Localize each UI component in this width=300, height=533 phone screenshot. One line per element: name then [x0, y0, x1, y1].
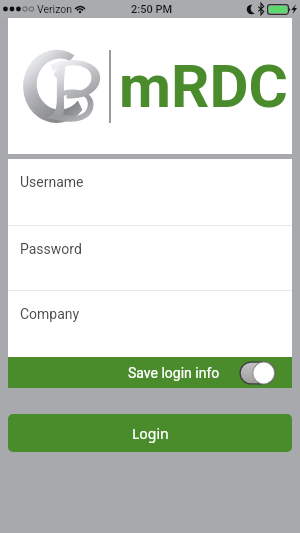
staticText: Password [20, 241, 82, 257]
staticText: Verizon [37, 3, 73, 15]
staticText: Company [20, 306, 80, 322]
button[interactable]: Password [8, 226, 292, 290]
button[interactable]: Company [8, 291, 292, 357]
staticText: Save login info [128, 365, 220, 381]
staticText: mRDC [119, 51, 288, 121]
button[interactable]: Login [8, 414, 292, 452]
staticText: 2:50 PM [131, 3, 173, 16]
button[interactable]: Username [8, 159, 292, 225]
staticText: Login [132, 424, 169, 443]
staticText: Username [20, 174, 84, 190]
button[interactable]: Save login info toggle [239, 361, 276, 385]
button[interactable]: Save login info [8, 357, 292, 388]
